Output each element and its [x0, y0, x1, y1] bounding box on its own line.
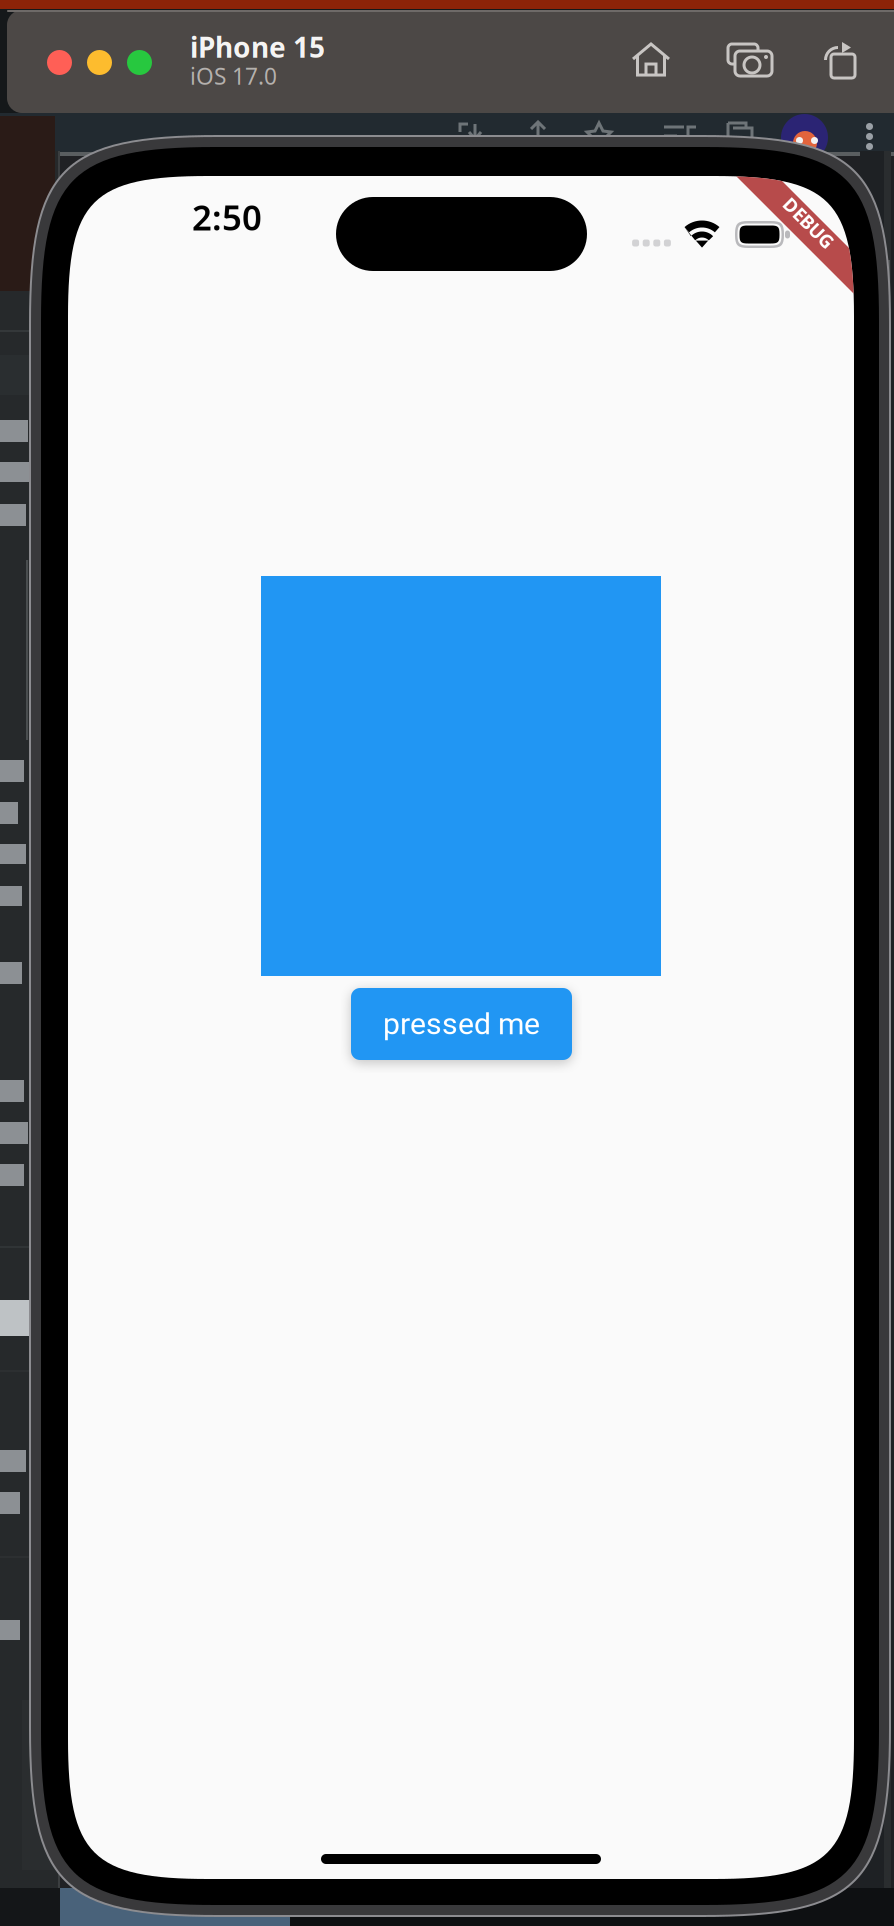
button[interactable]: Home [631, 42, 670, 78]
staticText: iPhone 15 [190, 28, 325, 66]
staticText: 2:50 [192, 194, 262, 240]
staticText: DEBUG [777, 211, 841, 235]
button[interactable]: Screenshot [728, 42, 772, 78]
staticText: iOS 17.0 [190, 61, 277, 91]
button[interactable]: Record screen [824, 42, 858, 78]
staticText: ks [863, 191, 887, 223]
staticText: pressed me [383, 1006, 540, 1042]
button[interactable]: pressed me [351, 988, 572, 1060]
